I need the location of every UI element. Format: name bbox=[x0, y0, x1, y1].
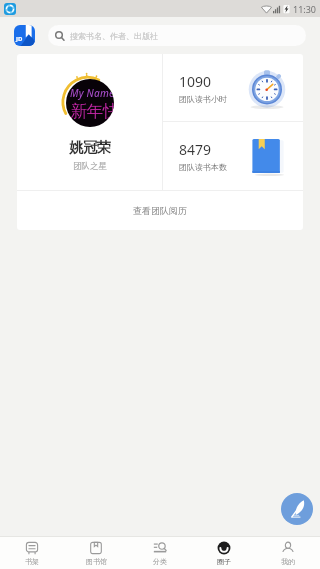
staticText: 团队读书小时 bbox=[179, 94, 227, 104]
button[interactable]: 圈子 bbox=[192, 537, 256, 569]
button[interactable]: 搜索书名、作者、出版社 bbox=[48, 25, 306, 46]
staticText: 新年快乐 bbox=[71, 101, 114, 122]
staticText: 查看团队阅历 bbox=[133, 205, 187, 216]
staticText: 8479 bbox=[179, 140, 212, 159]
button[interactable]: 图书馆 bbox=[64, 537, 128, 569]
button[interactable]: App logo bbox=[14, 25, 35, 46]
staticText: 1090 bbox=[179, 72, 212, 91]
staticText: JD bbox=[16, 35, 23, 43]
staticText: 搜索书名、作者、出版社 bbox=[70, 31, 158, 41]
staticText: 书架 bbox=[25, 557, 39, 566]
staticText: 我的 bbox=[281, 557, 295, 566]
button[interactable]: 分类 bbox=[128, 537, 192, 569]
staticText: 团队之星 bbox=[73, 161, 107, 172]
button[interactable]: 查看团队阅历 bbox=[17, 191, 303, 230]
staticText: 姚冠荣 bbox=[69, 139, 111, 157]
button[interactable]: 书架 bbox=[0, 537, 64, 569]
staticText: 分类 bbox=[153, 557, 167, 566]
staticText: 团队读书本数 bbox=[179, 162, 227, 172]
staticText: 11:30 bbox=[293, 3, 317, 15]
button[interactable]: Write a note bbox=[281, 493, 313, 525]
button[interactable]: 我的 bbox=[256, 537, 320, 569]
staticText: 图书馆 bbox=[86, 557, 107, 566]
staticText: My Name bbox=[70, 86, 114, 100]
staticText: 圈子 bbox=[217, 557, 231, 566]
